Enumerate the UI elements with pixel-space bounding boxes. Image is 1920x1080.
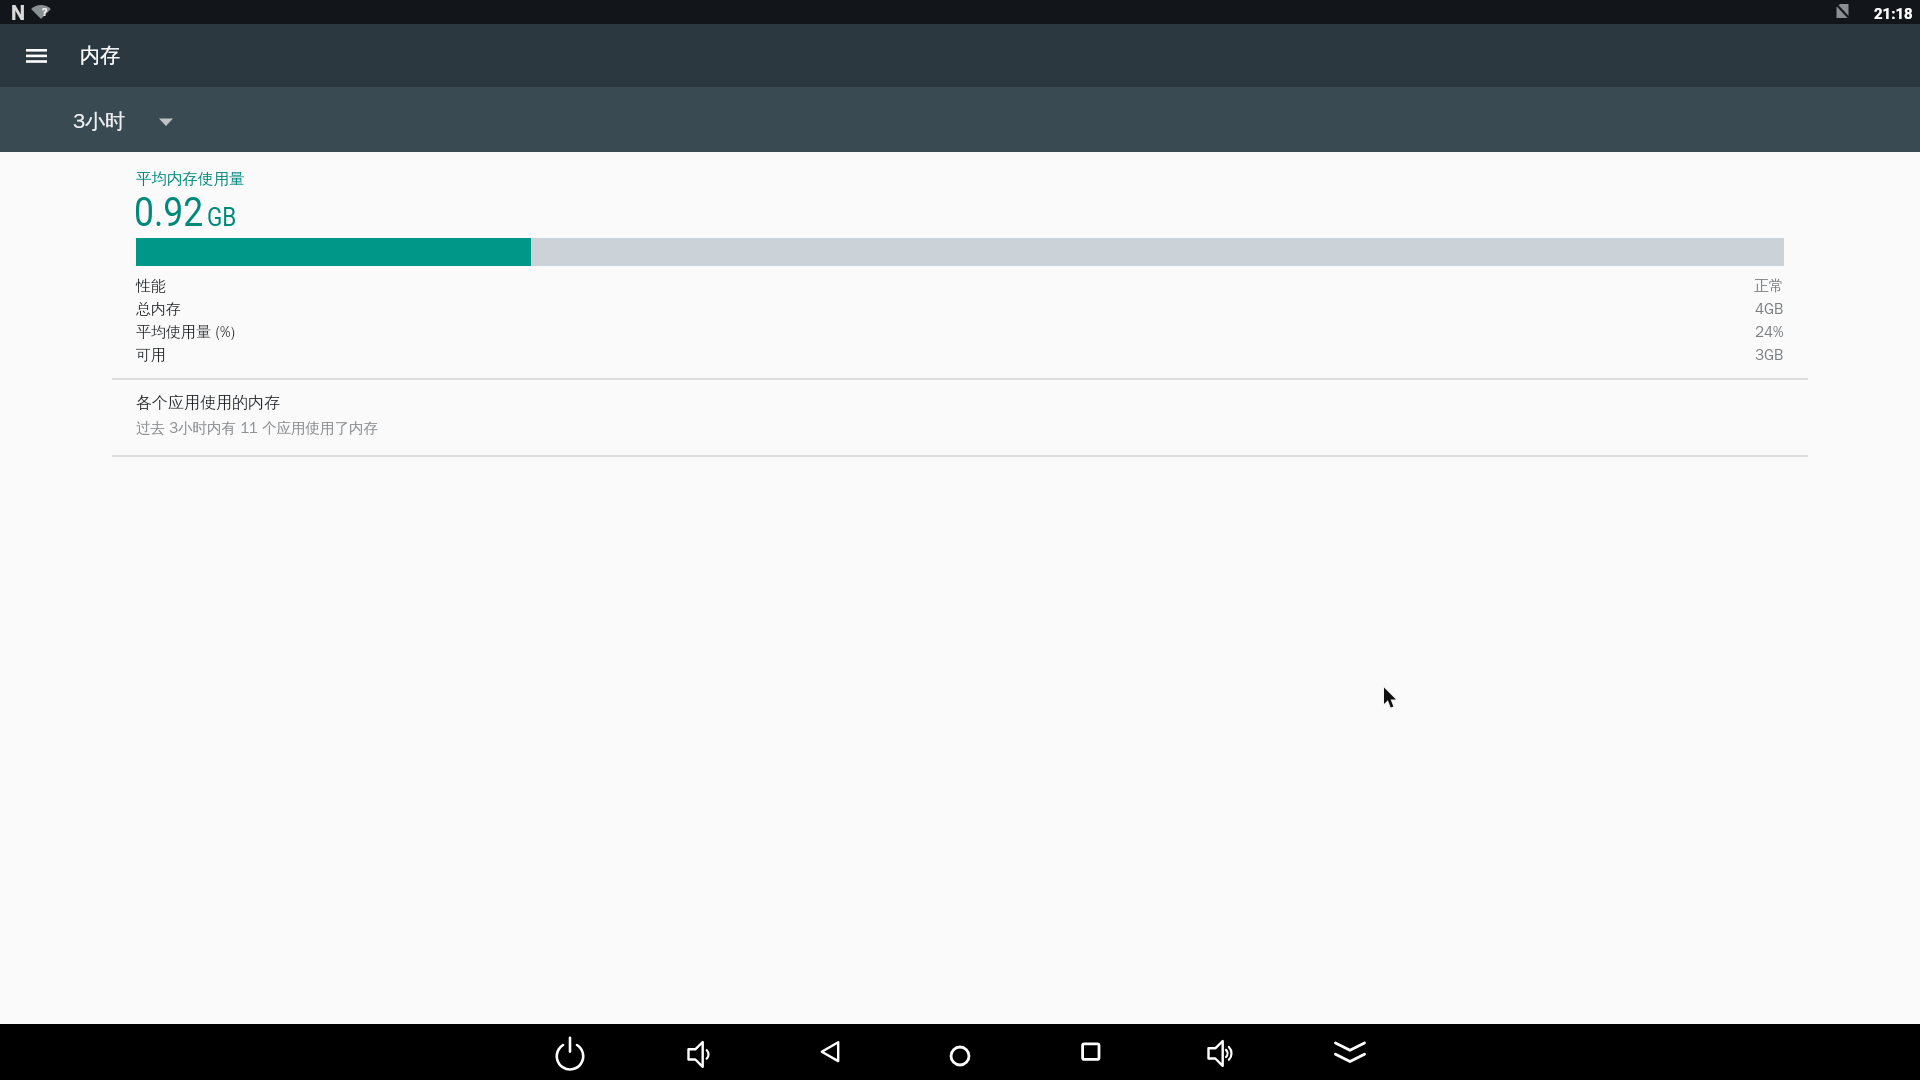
staticText: 21:18: [1874, 5, 1913, 23]
staticText: 性能: [136, 277, 166, 296]
staticText: 3GB: [1755, 346, 1784, 365]
staticText: 过去 3小时内有 11 个应用使用了内存: [136, 419, 379, 437]
staticText: 3小时: [73, 109, 125, 134]
staticText: 平均使用量 (%): [136, 323, 235, 342]
staticText: 各个应用使用的内存: [136, 393, 280, 413]
staticText: 24%: [1755, 323, 1784, 342]
staticText: 0.92: [134, 189, 203, 236]
button[interactable]: 各个应用使用的内存: [112, 380, 1808, 454]
staticText: GB: [207, 202, 236, 232]
button[interactable]: [1196, 1028, 1244, 1076]
button[interactable]: [12, 32, 60, 80]
button[interactable]: [676, 1028, 724, 1076]
button[interactable]: [1326, 1028, 1374, 1076]
staticText: 内存: [80, 43, 120, 68]
staticText: N: [11, 1, 26, 24]
button[interactable]: [546, 1028, 594, 1076]
button[interactable]: [936, 1028, 984, 1076]
staticText: 正常: [1754, 277, 1784, 296]
button[interactable]: [1066, 1028, 1114, 1076]
staticText: 4GB: [1755, 300, 1784, 319]
staticText: 总内存: [136, 300, 181, 319]
staticText: 可用: [136, 346, 166, 365]
staticText: ?: [42, 6, 48, 19]
button[interactable]: [806, 1028, 854, 1076]
button[interactable]: 3小时: [56, 95, 190, 144]
staticText: 平均内存使用量: [136, 169, 245, 189]
